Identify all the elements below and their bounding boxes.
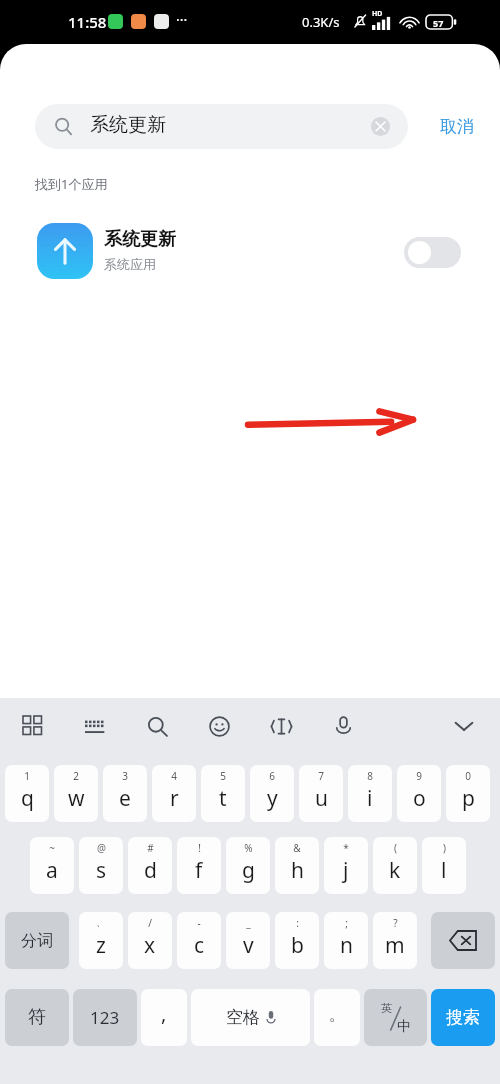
staticText: 11:58 xyxy=(68,12,107,32)
button[interactable]: Keyboard layout xyxy=(73,704,117,748)
button[interactable]: 系统更新 xyxy=(35,104,408,149)
button[interactable]: _ xyxy=(226,912,270,969)
button[interactable]: 123 xyxy=(73,989,137,1046)
button[interactable]: @ xyxy=(79,837,123,894)
button[interactable]: 分词 xyxy=(5,912,69,969)
staticText: ~ xyxy=(49,841,55,855)
staticText: y xyxy=(267,784,278,813)
staticText: z xyxy=(96,931,106,960)
button[interactable]: Search xyxy=(135,704,179,748)
staticText: j xyxy=(343,856,349,885)
staticText: f xyxy=(195,856,203,885)
staticText: _ xyxy=(246,916,251,930)
button[interactable]: 符 xyxy=(5,989,69,1046)
button[interactable]: Emoji xyxy=(197,704,241,748)
staticText: s xyxy=(96,856,107,885)
button[interactable]: ; xyxy=(324,912,368,969)
staticText: * xyxy=(343,841,349,855)
button[interactable]: # xyxy=(128,837,172,894)
button[interactable]: 3 xyxy=(103,765,147,822)
staticText: g xyxy=(242,856,255,885)
staticText: # xyxy=(147,841,154,855)
button[interactable]: 5 xyxy=(201,765,245,822)
button[interactable]: 搜索 xyxy=(431,989,495,1046)
staticText: 3 xyxy=(122,769,128,783)
button[interactable]: ? xyxy=(373,912,417,969)
staticText: e xyxy=(119,784,131,813)
button[interactable]: % xyxy=(226,837,270,894)
button[interactable]: 8 xyxy=(348,765,392,822)
button[interactable]: 1 xyxy=(5,765,49,822)
button[interactable]: 英 xyxy=(364,989,427,1046)
staticText: ··· xyxy=(176,10,188,29)
staticText: 系统更新 xyxy=(104,228,176,251)
staticText: 4 xyxy=(171,769,177,783)
staticText: ) xyxy=(443,841,446,855)
button[interactable]: Apps xyxy=(11,704,55,748)
staticText: 6 xyxy=(269,769,275,783)
button[interactable]: , xyxy=(141,989,187,1046)
staticText: 123 xyxy=(90,1006,120,1029)
staticText: u xyxy=(315,784,328,813)
button[interactable]: ( xyxy=(373,837,417,894)
button[interactable]: 9 xyxy=(397,765,441,822)
button[interactable]: Text tools xyxy=(259,704,303,748)
staticText: b xyxy=(291,931,304,960)
staticText: 分词 xyxy=(21,931,53,951)
staticText: v xyxy=(243,931,254,960)
staticText: 找到1个应用 xyxy=(35,175,108,193)
button[interactable]: 0 xyxy=(446,765,490,822)
button[interactable]: Toggle xyxy=(404,237,461,268)
staticText: h xyxy=(291,856,304,885)
staticText: i xyxy=(367,784,373,813)
staticText: n xyxy=(340,931,353,960)
button[interactable]: 取消 xyxy=(422,104,492,149)
staticText: 空格 xyxy=(226,1007,260,1028)
staticText: @ xyxy=(97,841,106,855)
button[interactable]: / xyxy=(128,912,172,969)
button[interactable]: 2 xyxy=(54,765,98,822)
staticText: x xyxy=(144,931,156,960)
staticText: d xyxy=(144,856,157,885)
button[interactable]: 空格 xyxy=(191,989,310,1046)
button[interactable]: 6 xyxy=(250,765,294,822)
staticText: 0 xyxy=(465,769,471,783)
button[interactable]: 。 xyxy=(314,989,360,1046)
staticText: 中 xyxy=(397,1018,411,1036)
button[interactable]: * xyxy=(324,837,368,894)
button[interactable]: Voice input xyxy=(321,704,365,748)
staticText: HD xyxy=(372,9,383,19)
staticText: m xyxy=(385,931,405,960)
staticText: 1 xyxy=(24,769,30,783)
button[interactable]: Clear xyxy=(371,117,390,136)
staticText: q xyxy=(21,784,34,813)
button[interactable]: 7 xyxy=(299,765,343,822)
staticText: 0.3K/s xyxy=(302,13,340,31)
staticText: 取消 xyxy=(440,116,474,137)
staticText: 7 xyxy=(318,769,324,783)
staticText: 5 xyxy=(220,769,226,783)
staticText: k xyxy=(389,856,401,885)
button[interactable]: Hide keyboard xyxy=(442,704,486,748)
button[interactable]: ) xyxy=(422,837,466,894)
staticText: 系统更新 xyxy=(90,113,166,137)
staticText: a xyxy=(46,856,58,885)
staticText: 搜索 xyxy=(446,1007,480,1028)
staticText: 系统应用 xyxy=(104,256,156,272)
staticText: o xyxy=(413,784,426,813)
button[interactable]: 系统更新 xyxy=(0,214,500,294)
staticText: / xyxy=(148,916,152,930)
button[interactable]: : xyxy=(275,912,319,969)
button[interactable]: - xyxy=(177,912,221,969)
staticText: 符 xyxy=(28,1006,46,1029)
button[interactable]: ! xyxy=(177,837,221,894)
button[interactable]: Backspace xyxy=(431,912,495,969)
staticText: 、 xyxy=(96,916,106,929)
button[interactable]: 4 xyxy=(152,765,196,822)
button[interactable]: ~ xyxy=(30,837,74,894)
staticText: : xyxy=(296,916,299,930)
staticText: c xyxy=(194,931,205,960)
button[interactable]: & xyxy=(275,837,319,894)
staticText: t xyxy=(219,784,227,813)
button[interactable]: 、 xyxy=(79,912,123,969)
